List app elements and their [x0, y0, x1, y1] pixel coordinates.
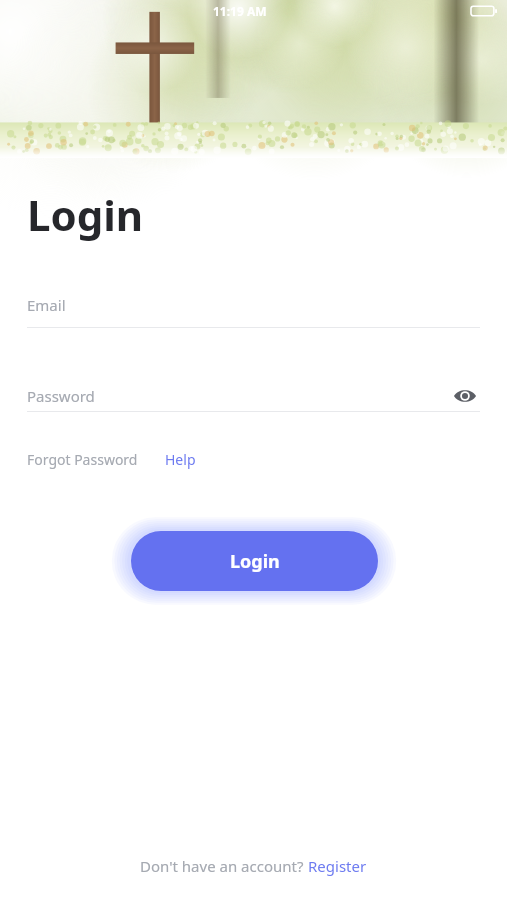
- staticText: Login: [27, 186, 144, 243]
- staticText: Help: [165, 450, 196, 469]
- staticText: Forgot Password: [27, 450, 138, 469]
- staticText: Login: [230, 549, 280, 574]
- staticText: Don't have an account?: [140, 856, 308, 876]
- staticText: Email: [27, 295, 66, 315]
- button[interactable]: Help: [165, 450, 196, 469]
- button[interactable]: Email: [27, 295, 480, 328]
- button[interactable]: Password: [27, 381, 480, 412]
- button[interactable]: Show password: [450, 381, 480, 411]
- button[interactable]: Login: [131, 531, 378, 591]
- staticText: 11:19 AM: [213, 3, 267, 19]
- button[interactable]: Forgot Password: [27, 450, 138, 469]
- staticText: Register: [308, 856, 367, 876]
- staticText: Password: [27, 386, 95, 406]
- button[interactable]: Don't have an account?: [27, 856, 480, 900]
